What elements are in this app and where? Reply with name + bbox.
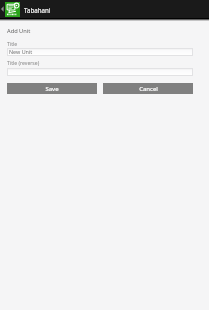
staticText: Title (reverse) <box>7 60 40 67</box>
staticText: New Unit <box>9 48 33 55</box>
staticText: Add Unit <box>7 27 31 35</box>
staticText: Title <box>7 41 18 48</box>
button[interactable]: Save <box>7 83 97 94</box>
staticText: Save <box>45 85 59 93</box>
staticText: Cancel <box>139 85 158 93</box>
button[interactable]: New Unit <box>7 48 193 56</box>
button[interactable] <box>7 68 193 76</box>
button[interactable]: Cancel <box>103 83 193 94</box>
staticText: Tabahani <box>24 6 51 14</box>
button[interactable]: Navigate up <box>0 0 20 18</box>
